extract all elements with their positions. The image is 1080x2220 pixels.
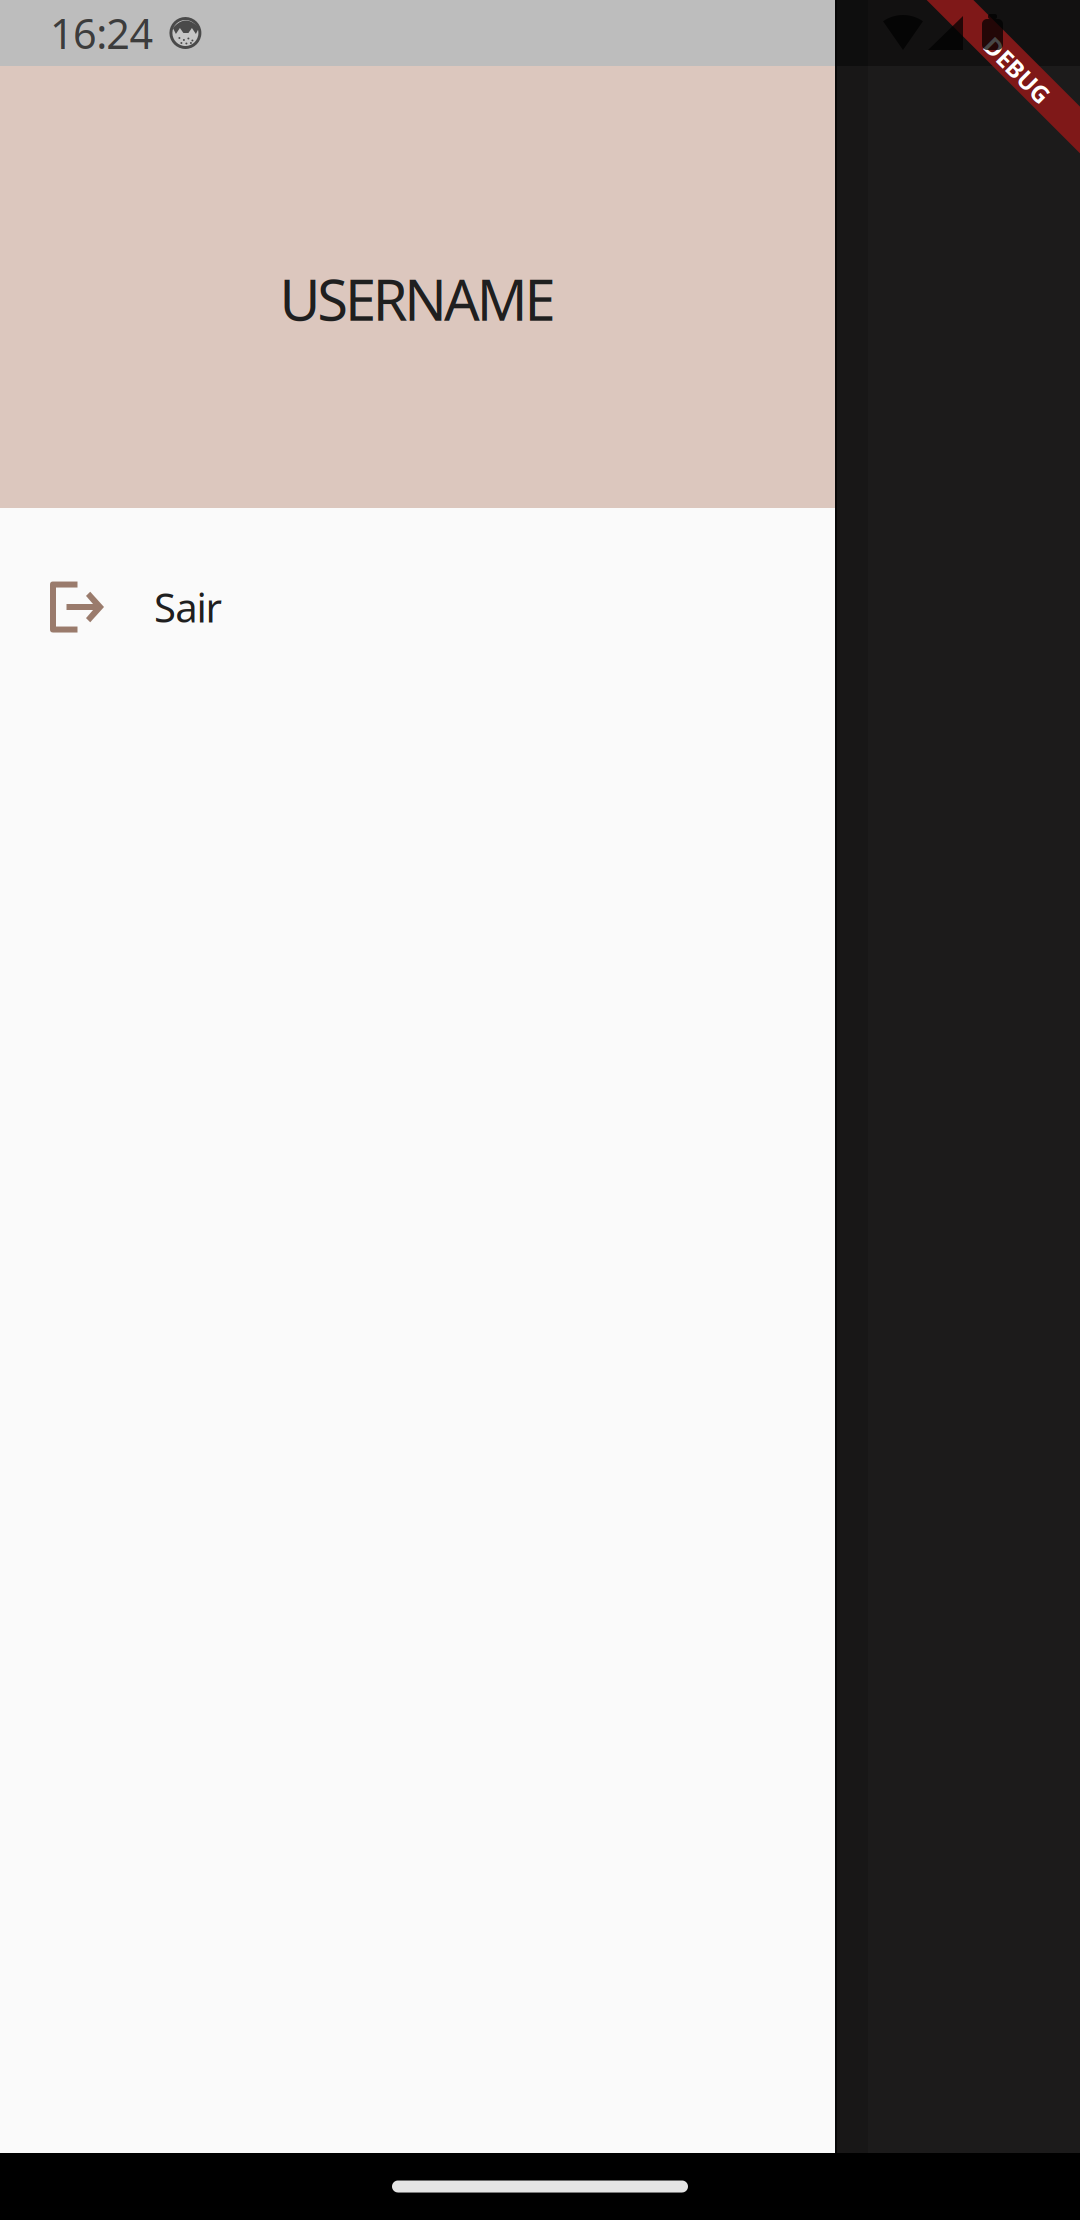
staticText: DEBUG	[979, 51, 1061, 83]
staticText: 16:24	[50, 6, 153, 60]
staticText: Sair	[154, 580, 223, 633]
button[interactable]: Close menu	[835, 66, 1080, 2153]
staticText: USERNAME	[279, 262, 555, 336]
button[interactable]: Sair	[0, 552, 835, 662]
